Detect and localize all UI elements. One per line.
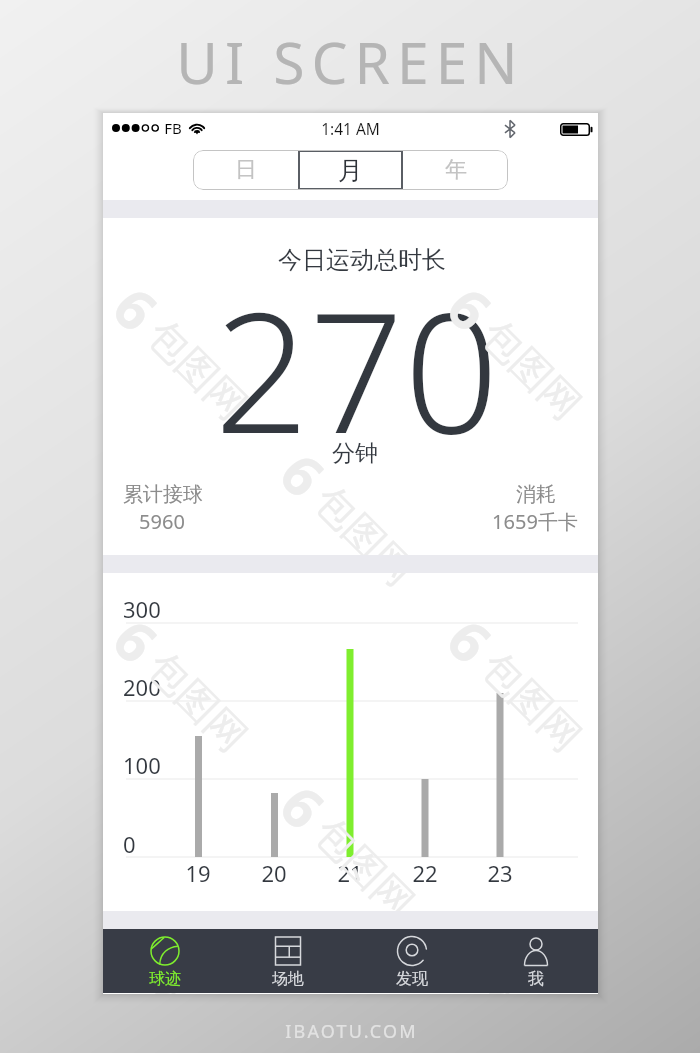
staticText: 包图网 xyxy=(137,641,258,762)
staticText: UI SCREEN xyxy=(176,23,525,101)
staticText: 包图网 xyxy=(137,309,258,430)
staticText: 300 xyxy=(123,594,161,624)
staticText: 累计接球 xyxy=(123,482,203,507)
staticText: 发现 xyxy=(396,969,428,989)
staticText: 6 xyxy=(103,270,175,347)
staticText: 年 xyxy=(445,156,467,184)
staticText: 6 xyxy=(265,768,342,845)
staticText: 场地 xyxy=(272,969,304,989)
staticText: 包图网 xyxy=(304,475,425,596)
button[interactable]: 年 xyxy=(403,150,508,190)
button[interactable]: 月 xyxy=(298,150,403,190)
staticText: 270 xyxy=(214,256,499,456)
button[interactable]: 日 xyxy=(193,150,298,190)
button[interactable]: 发现 xyxy=(350,929,474,993)
staticText: 100 xyxy=(123,750,161,780)
button[interactable]: 球迹 xyxy=(103,929,226,993)
staticText: 6 xyxy=(432,270,509,347)
staticText: FB xyxy=(164,118,182,138)
staticText: 6 xyxy=(432,602,509,679)
staticText: 0 xyxy=(123,829,136,859)
staticText: 21 xyxy=(337,858,363,888)
staticText: 我 xyxy=(528,969,544,989)
staticText: 200 xyxy=(123,672,161,702)
staticText: 1659千卡 xyxy=(492,508,578,535)
staticText: 包图网 xyxy=(471,973,592,994)
staticText: 消耗 xyxy=(516,482,556,507)
staticText: 6 xyxy=(103,934,175,994)
staticText: 包图网 xyxy=(137,973,258,994)
staticText: 22 xyxy=(412,858,438,888)
staticText: 1:41 AM xyxy=(321,118,380,139)
staticText: 6 xyxy=(432,934,509,994)
staticText: 分钟 xyxy=(332,439,378,468)
staticText: 月 xyxy=(338,155,363,186)
staticText: 5960 xyxy=(139,508,185,535)
staticText: 日 xyxy=(235,156,257,184)
staticText: 包图网 xyxy=(304,807,425,928)
button[interactable]: 场地 xyxy=(226,929,350,993)
staticText: 19 xyxy=(185,858,211,888)
staticText: 23 xyxy=(487,858,513,888)
staticText: 包图网 xyxy=(471,309,592,430)
staticText: 6 xyxy=(103,602,175,679)
staticText: 20 xyxy=(261,858,287,888)
staticText: IBAOTU.COM xyxy=(285,1019,418,1044)
staticText: 包图网 xyxy=(471,641,592,762)
staticText: 6 xyxy=(265,436,342,513)
button[interactable]: 我 xyxy=(474,929,598,993)
staticText: 今日运动总时长 xyxy=(278,245,446,275)
staticText: 球迹 xyxy=(149,969,181,989)
